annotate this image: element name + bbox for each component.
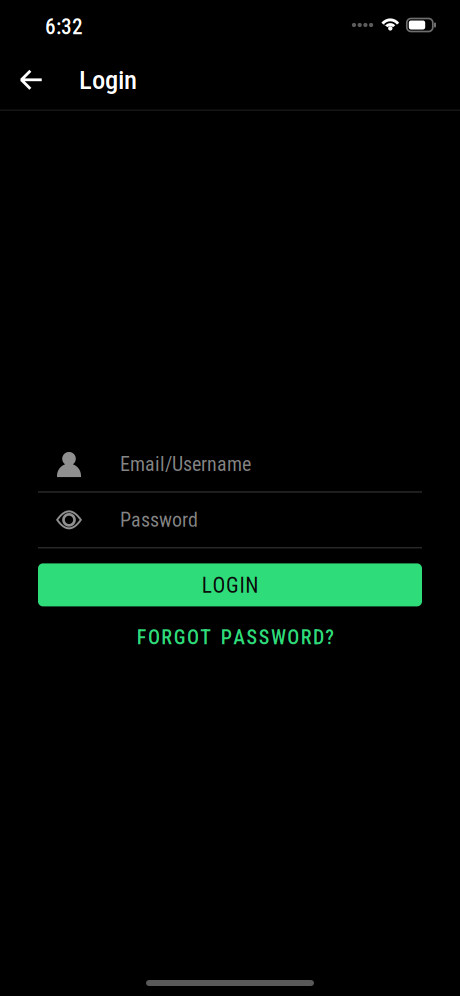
button[interactable]: L — [38, 563, 422, 606]
staticText: F — [137, 626, 147, 649]
staticText: O — [187, 626, 199, 649]
staticText: G — [174, 626, 186, 649]
staticText: ? — [325, 626, 334, 649]
staticText: N — [245, 573, 258, 598]
staticText: R — [301, 626, 312, 649]
staticText: S — [259, 626, 270, 649]
staticText: Password — [120, 508, 198, 531]
staticText: 6:32 — [45, 14, 83, 39]
staticText: L — [202, 573, 212, 598]
staticText: A — [233, 626, 245, 649]
staticText: T — [200, 626, 211, 649]
staticText: O — [212, 573, 225, 598]
staticText: W — [271, 626, 286, 649]
button[interactable]: Back — [10, 56, 52, 104]
staticText: S — [246, 626, 257, 649]
staticText: P — [221, 626, 232, 649]
staticText: I — [240, 573, 245, 598]
staticText: Login — [79, 64, 137, 95]
staticText: R — [161, 626, 172, 649]
staticText: O — [287, 626, 299, 649]
button[interactable]: F — [38, 622, 422, 652]
staticText: D — [313, 626, 324, 649]
staticText: G — [226, 573, 239, 598]
staticText: Email/Username — [120, 452, 251, 476]
staticText: O — [148, 626, 160, 649]
